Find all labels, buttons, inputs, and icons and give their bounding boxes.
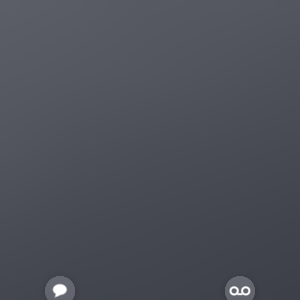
button[interactable]: Message <box>45 276 75 300</box>
button[interactable]: Voicemail <box>225 276 255 300</box>
